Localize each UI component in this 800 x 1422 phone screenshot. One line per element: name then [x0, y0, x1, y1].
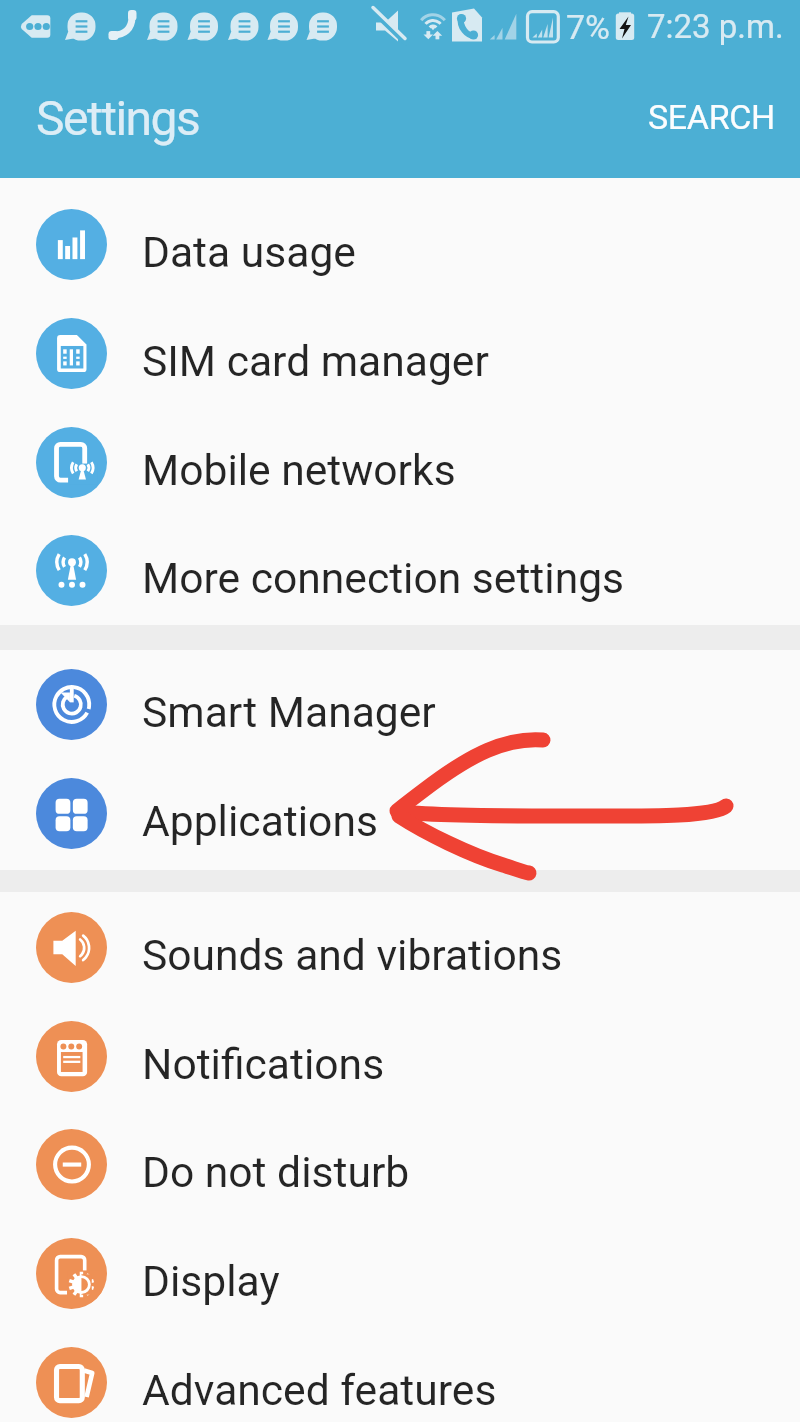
staticText: SIM card manager — [142, 336, 489, 386]
button[interactable]: Display — [0, 1219, 800, 1328]
staticText: Applications — [142, 796, 378, 846]
staticText: More connection settings — [142, 553, 625, 603]
staticText: Advanced features — [142, 1365, 497, 1415]
button[interactable]: Smart Manager — [0, 650, 800, 759]
staticText: Do not disturb — [142, 1147, 410, 1197]
button[interactable]: Data usage — [0, 190, 800, 299]
button[interactable]: SEARCH — [620, 75, 800, 159]
button[interactable]: Advanced features — [0, 1328, 800, 1422]
staticText: Mobile networks — [142, 445, 456, 495]
staticText: 7:23 p.m. — [647, 7, 784, 46]
button[interactable]: Mobile networks — [0, 408, 800, 517]
button[interactable]: Notifications — [0, 1002, 800, 1111]
staticText: Smart Manager — [142, 687, 436, 737]
staticText: SEARCH — [648, 97, 775, 137]
staticText: Sounds and vibrations — [142, 930, 563, 980]
staticText: Settings — [36, 90, 200, 146]
button[interactable]: More connection settings — [0, 516, 800, 625]
staticText: Notifications — [142, 1039, 385, 1089]
staticText: Display — [142, 1256, 280, 1306]
staticText: 7% — [566, 7, 611, 47]
button[interactable]: SIM card manager — [0, 299, 800, 408]
button[interactable]: Do not disturb — [0, 1110, 800, 1219]
button[interactable]: Sounds and vibrations — [0, 893, 800, 1002]
button[interactable]: Applications — [0, 759, 800, 868]
staticText: Data usage — [142, 227, 356, 277]
